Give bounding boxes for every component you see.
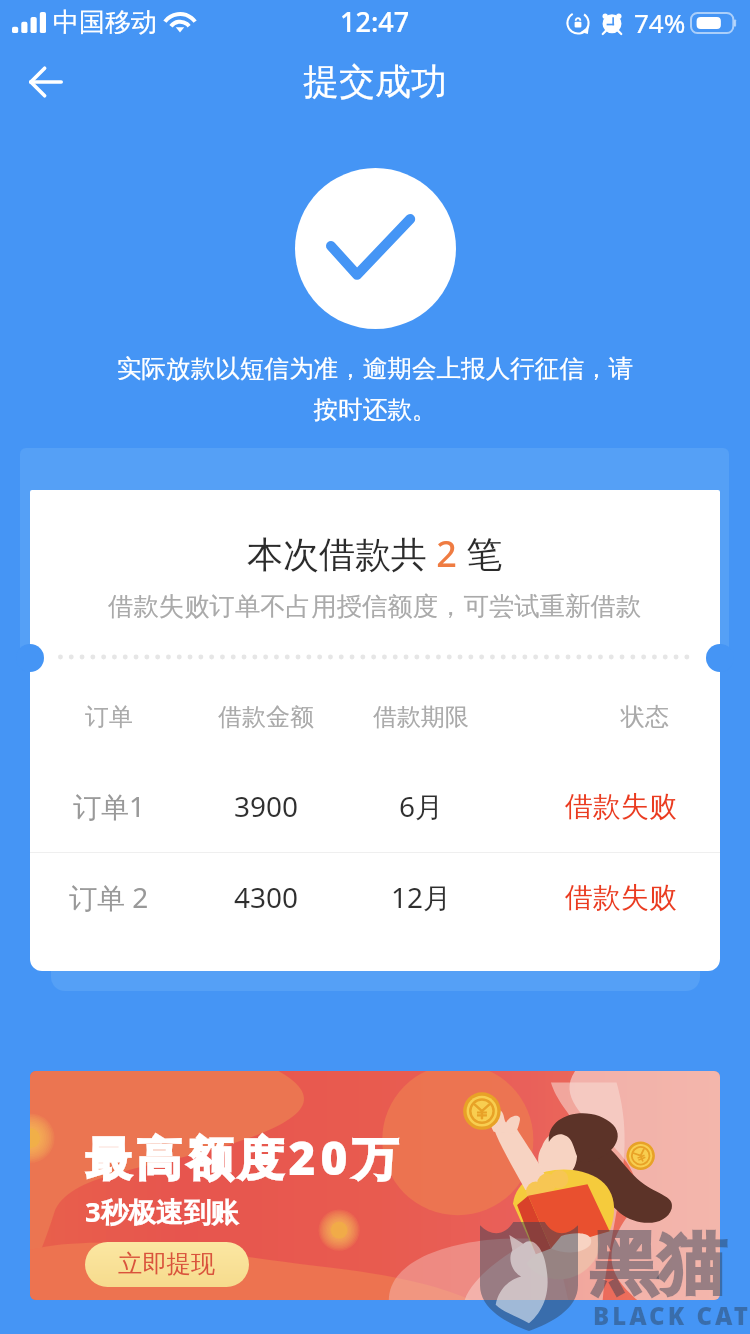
staticText: 最高额度20万	[85, 1126, 404, 1189]
staticText: 立即提现	[118, 1249, 216, 1280]
staticText: BLACK CAT	[593, 1299, 750, 1332]
staticText: 借款失败	[565, 789, 677, 824]
staticText: 借款金额	[218, 702, 314, 732]
staticText: 4300	[234, 878, 299, 916]
staticText: 借款失败订单不占用授信额度，可尝试重新借款	[108, 591, 642, 623]
staticText: 订单	[85, 702, 133, 732]
staticText: 借款期限	[373, 702, 469, 732]
staticText: 订单1	[73, 787, 146, 825]
staticText: 12:47	[340, 3, 410, 40]
staticText: 状态	[621, 702, 669, 732]
staticText: 6月	[399, 787, 444, 825]
staticText: 黑猫	[590, 1222, 726, 1308]
staticText: 本次借款共 2 笔	[247, 529, 503, 578]
staticText: 74%	[634, 5, 686, 40]
button[interactable]: 立即提现	[85, 1242, 249, 1287]
staticText: 12月	[391, 878, 452, 916]
staticText: 3秒极速到账	[85, 1193, 239, 1231]
button[interactable]: 最高额度20万	[30, 1071, 720, 1300]
staticText: 订单 2	[69, 878, 149, 916]
staticText: 中国移动	[53, 6, 157, 39]
staticText: 提交成功	[303, 59, 447, 104]
button[interactable]: Back	[0, 44, 92, 119]
staticText: 3900	[234, 787, 299, 825]
staticText: 实际放款以短信为准，逾期会上报人行征信，请按时还款。	[112, 353, 638, 425]
staticText: 借款失败	[565, 880, 677, 915]
